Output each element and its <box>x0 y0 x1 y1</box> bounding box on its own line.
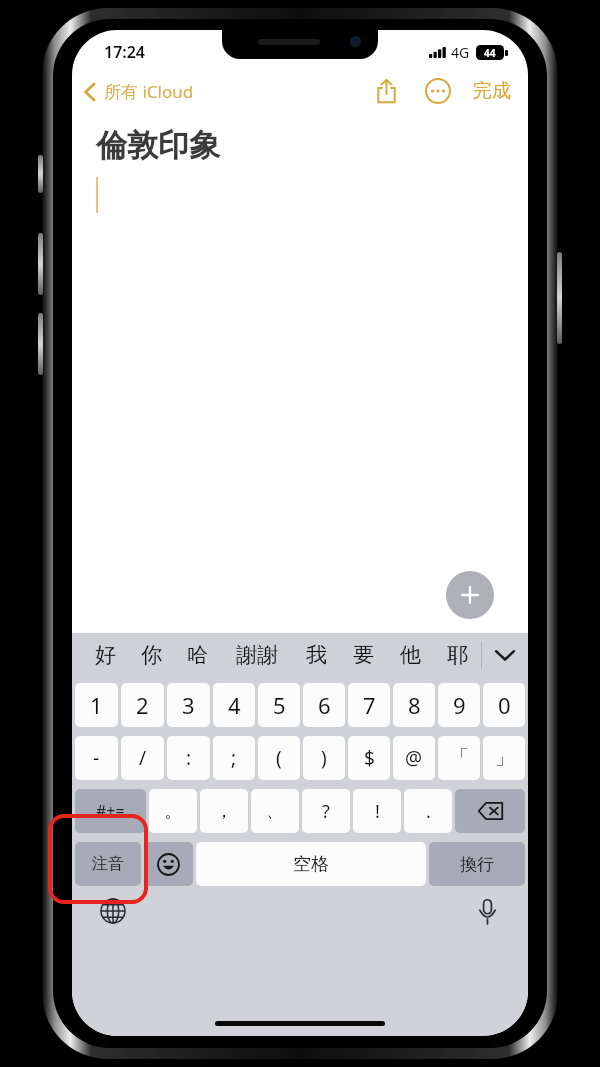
staticText: 「 <box>450 746 469 770</box>
staticText: 倫敦印象 <box>96 126 220 165</box>
button[interactable]: Backspace <box>455 789 525 833</box>
staticText: #+= <box>96 800 125 822</box>
staticText: 好 <box>95 642 116 668</box>
staticText: 4 <box>228 690 241 720</box>
button[interactable]: 完成 <box>468 74 516 108</box>
button[interactable]: 好 <box>82 633 128 677</box>
button[interactable]: Add attachment <box>446 571 494 619</box>
staticText: ) <box>321 745 327 771</box>
button[interactable]: 2 <box>121 683 164 727</box>
button[interactable]: / <box>121 736 164 780</box>
button[interactable]: 5 <box>258 683 300 727</box>
staticText: 空格 <box>293 853 329 876</box>
staticText: @ <box>405 745 423 771</box>
button[interactable]: Dictate <box>466 890 508 932</box>
staticText: $ <box>364 745 375 771</box>
button[interactable]: 你 <box>128 633 174 677</box>
staticText: ; <box>231 745 237 771</box>
button[interactable]: 我 <box>293 633 340 677</box>
staticText: 9 <box>453 690 466 720</box>
button[interactable]: ， <box>200 789 248 833</box>
staticText: / <box>139 745 147 771</box>
button[interactable]: 空格 <box>196 842 426 886</box>
staticText: 4G <box>451 43 470 62</box>
staticText: 完成 <box>473 79 511 103</box>
staticText: 哈 <box>187 642 208 668</box>
staticText: 17:24 <box>104 41 146 63</box>
button[interactable]: 3 <box>167 683 210 727</box>
staticText: ! <box>375 799 380 824</box>
staticText: 7 <box>363 690 376 720</box>
button[interactable]: #+= <box>75 789 146 833</box>
button[interactable]: 哈 <box>174 633 221 677</box>
staticText: 1 <box>90 690 103 720</box>
staticText: : <box>186 745 192 771</box>
button[interactable]: 。 <box>149 789 197 833</box>
button[interactable]: - <box>75 736 118 780</box>
staticText: 換行 <box>460 854 494 875</box>
button[interactable]: 注音 <box>75 842 141 886</box>
button[interactable]: 、 <box>251 789 299 833</box>
button[interactable]: More options <box>418 71 458 111</box>
button[interactable]: @ <box>393 736 435 780</box>
staticText: 你 <box>141 642 162 668</box>
button[interactable]: 6 <box>303 683 345 727</box>
staticText: 」 <box>495 746 514 770</box>
staticText: 要 <box>353 642 374 668</box>
staticText: 所有 iCloud <box>104 80 194 103</box>
button[interactable]: 謝謝 <box>221 633 293 677</box>
button[interactable]: : <box>167 736 210 780</box>
button[interactable]: ? <box>302 789 350 833</box>
button[interactable]: 要 <box>340 633 387 677</box>
staticText: - <box>93 745 100 771</box>
button[interactable]: 「 <box>438 736 480 780</box>
button[interactable]: 1 <box>75 683 118 727</box>
button[interactable]: 4 <box>213 683 255 727</box>
staticText: 2 <box>136 690 149 720</box>
staticText: 5 <box>273 690 286 720</box>
button[interactable]: 8 <box>393 683 435 727</box>
button[interactable]: 0 <box>483 683 525 727</box>
button[interactable]: 他 <box>387 633 434 677</box>
staticText: 。 <box>164 800 182 823</box>
button[interactable]: 」 <box>483 736 525 780</box>
staticText: 我 <box>306 642 327 668</box>
staticText: 注音 <box>92 854 124 874</box>
button[interactable]: Expand suggestions <box>482 633 528 677</box>
button[interactable]: Share <box>366 71 406 111</box>
button[interactable]: 9 <box>438 683 480 727</box>
button[interactable]: ; <box>213 736 255 780</box>
button[interactable]: . <box>404 789 452 833</box>
staticText: 3 <box>182 690 195 720</box>
staticText: ， <box>215 800 233 823</box>
staticText: 8 <box>408 690 421 720</box>
button[interactable]: 所有 iCloud <box>78 75 200 108</box>
staticText: . <box>426 799 431 824</box>
staticText: 6 <box>318 690 331 720</box>
staticText: ? <box>322 799 330 824</box>
button[interactable]: 耶 <box>434 633 481 677</box>
staticText: 44 <box>484 46 496 60</box>
button[interactable]: $ <box>348 736 390 780</box>
button[interactable]: ) <box>303 736 345 780</box>
staticText: 謝謝 <box>236 642 278 668</box>
button[interactable]: 換行 <box>429 842 525 886</box>
button[interactable]: 7 <box>348 683 390 727</box>
staticText: 0 <box>498 690 511 720</box>
staticText: 、 <box>266 800 284 823</box>
button[interactable]: Switch keyboard <box>92 890 134 932</box>
staticText: ( <box>276 745 282 771</box>
button[interactable]: Emoji <box>144 842 193 886</box>
button[interactable]: ( <box>258 736 300 780</box>
button[interactable]: ! <box>353 789 401 833</box>
staticText: 耶 <box>447 642 468 668</box>
staticText: 他 <box>400 642 421 668</box>
